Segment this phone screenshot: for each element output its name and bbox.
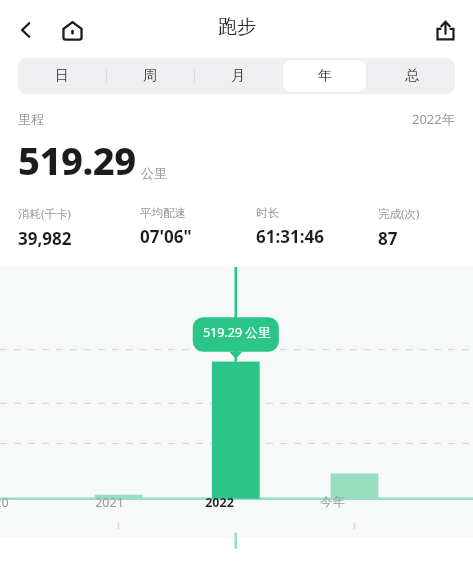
staticText: 平均配速 <box>140 206 186 220</box>
staticText: 总 <box>405 67 419 85</box>
button[interactable]: Home <box>54 12 90 48</box>
staticText: 跑步 <box>218 15 256 39</box>
staticText: 39,982 <box>18 227 72 250</box>
staticText: 公里 <box>141 165 167 181</box>
staticText: 完成(次) <box>378 206 420 222</box>
button[interactable]: 日 <box>18 58 106 94</box>
staticText: 2021 <box>95 494 124 511</box>
button[interactable]: Share <box>427 12 463 48</box>
staticText: 今年 <box>320 494 345 510</box>
staticText: 月 <box>231 67 245 85</box>
staticText: 2022 <box>205 494 234 511</box>
button[interactable]: 总 <box>368 58 455 94</box>
staticText: 消耗(千卡) <box>18 206 71 222</box>
staticText: 20 <box>0 494 9 511</box>
button[interactable]: 月 <box>194 58 281 94</box>
staticText: 里程 <box>18 111 44 127</box>
button[interactable]: Back <box>8 12 44 48</box>
staticText: 87 <box>378 227 398 250</box>
staticText: 519.29 <box>18 134 136 186</box>
staticText: 2022年 <box>412 110 455 128</box>
staticText: 07'06" <box>140 225 192 248</box>
staticText: 周 <box>143 67 157 85</box>
staticText: 年 <box>318 67 332 85</box>
staticText: 日 <box>55 67 69 85</box>
staticText: 519.29 公里 <box>203 324 271 341</box>
staticText: 时长 <box>256 206 279 220</box>
button[interactable]: 年 <box>281 58 368 94</box>
staticText: 61:31:46 <box>256 225 324 248</box>
button[interactable]: 周 <box>106 58 194 94</box>
